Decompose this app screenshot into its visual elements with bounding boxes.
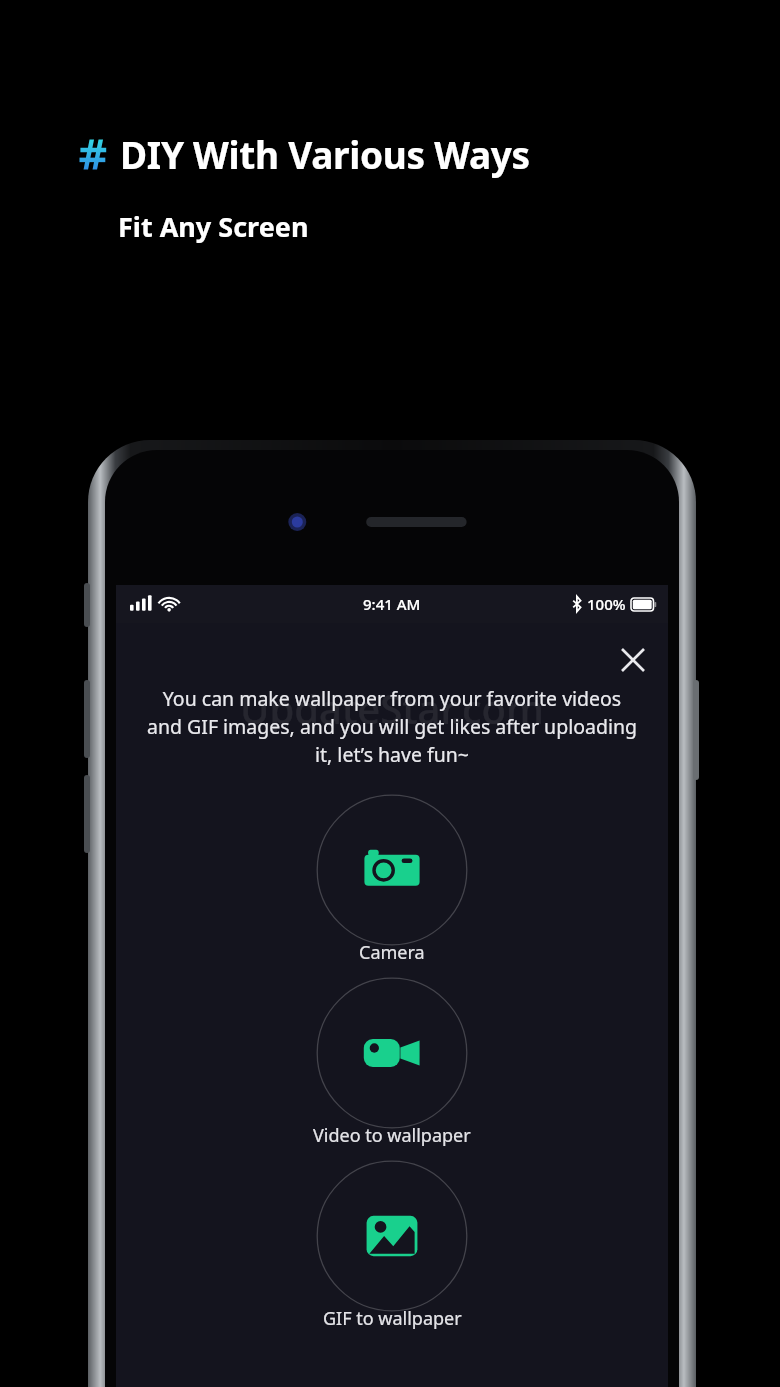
staticText: You can make wallpaper from your favorit… bbox=[144, 685, 640, 768]
button[interactable]: Video to wallpaper bbox=[116, 977, 668, 1154]
staticText: UpdateStar.com bbox=[240, 681, 544, 735]
staticText: 9:41 AM bbox=[363, 594, 421, 614]
staticText: Fit Any Screen bbox=[118, 208, 309, 245]
staticText: 100% bbox=[587, 594, 626, 614]
button[interactable]: Camera bbox=[116, 794, 668, 971]
button[interactable]: Image to wallpaper bbox=[116, 1160, 668, 1337]
staticText: Video to wallpaper bbox=[313, 1123, 471, 1148]
staticText: GIF to wallpaper bbox=[323, 1306, 462, 1331]
button[interactable]: Close bbox=[608, 635, 658, 685]
staticText: DIY With Various Ways bbox=[120, 129, 530, 179]
staticText: Camera bbox=[359, 940, 425, 965]
